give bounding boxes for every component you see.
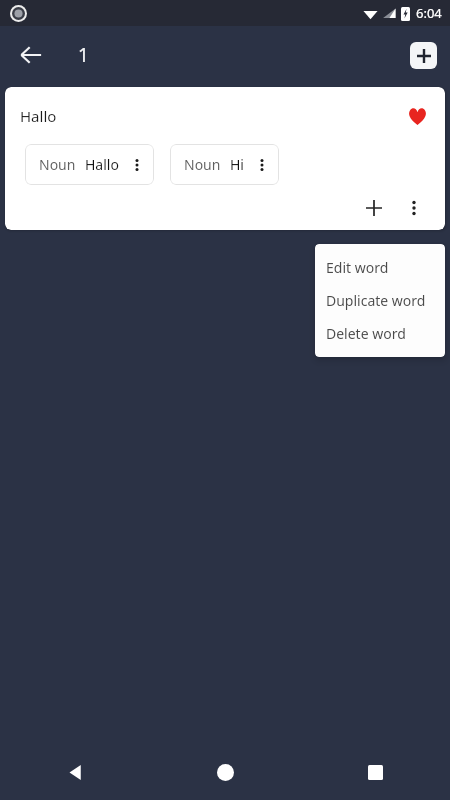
staticText: Noun: [184, 155, 221, 174]
button[interactable]: Add translation: [359, 193, 389, 223]
button[interactable]: Duplicate word: [315, 284, 445, 317]
button[interactable]: Edit word: [315, 251, 445, 284]
button[interactable]: Back: [0, 744, 150, 800]
button[interactable]: Back: [9, 33, 53, 77]
button[interactable]: Noun: [25, 144, 154, 185]
button[interactable]: Hallo: [5, 87, 445, 230]
staticText: Hi: [230, 155, 244, 174]
staticText: Edit word: [326, 258, 389, 277]
button[interactable]: Noun: [170, 144, 279, 185]
staticText: Noun: [39, 155, 76, 174]
staticText: Duplicate word: [326, 291, 426, 310]
staticText: Hallo: [20, 106, 57, 126]
staticText: 6:04: [416, 4, 442, 22]
staticText: Hallo: [85, 155, 119, 174]
button[interactable]: Add: [410, 42, 437, 69]
button[interactable]: Favorite: [403, 102, 431, 130]
button[interactable]: More options: [399, 193, 429, 223]
button[interactable]: Home: [150, 744, 300, 800]
staticText: Delete word: [326, 324, 406, 343]
button[interactable]: Delete word: [315, 317, 445, 350]
button[interactable]: Recents: [300, 744, 450, 800]
staticText: 1: [78, 42, 89, 68]
